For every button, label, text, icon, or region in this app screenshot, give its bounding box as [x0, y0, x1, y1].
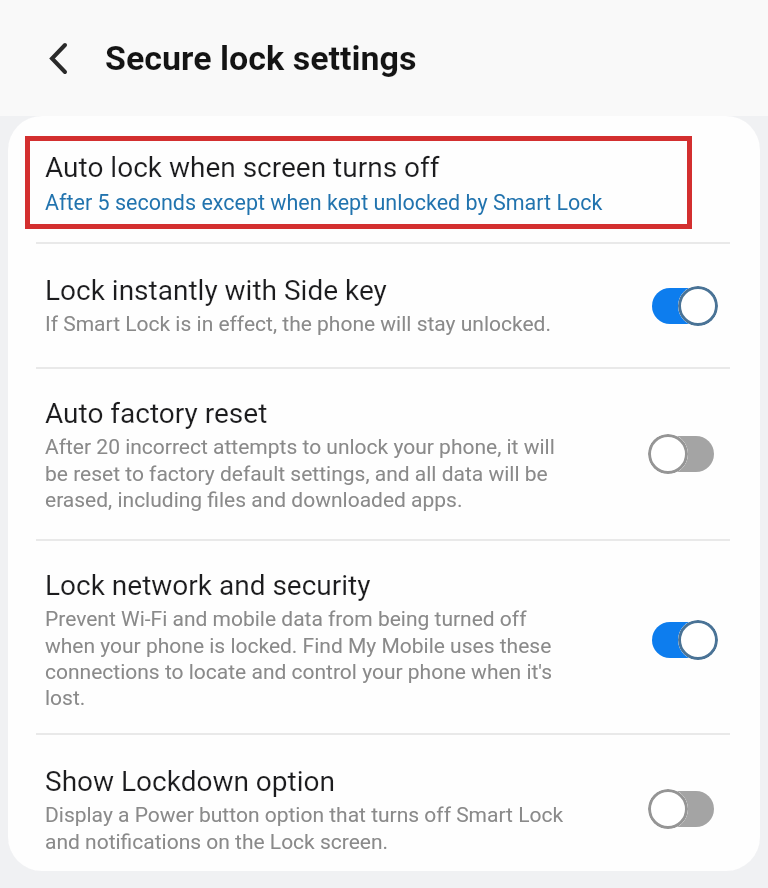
button[interactable]: [648, 620, 718, 660]
button[interactable]: Lock instantly with Side key: [45, 244, 718, 367]
staticText: Auto factory reset: [45, 397, 268, 430]
button[interactable]: Auto lock when screen turns off: [8, 116, 760, 242]
staticText: Secure lock settings: [105, 38, 417, 78]
staticText: If Smart Lock is in effect, the phone wi…: [45, 312, 551, 337]
button[interactable]: [648, 789, 718, 829]
button[interactable]: Auto factory reset: [45, 369, 718, 539]
staticText: Lock instantly with Side key: [45, 274, 387, 307]
staticText: Prevent Wi-Fi and mobile data from being…: [45, 607, 553, 710]
staticText: Auto lock when screen turns off: [45, 151, 440, 184]
staticText: After 20 incorrect attempts to unlock yo…: [45, 435, 555, 512]
button[interactable]: [38, 30, 78, 86]
button[interactable]: [648, 286, 718, 326]
staticText: Show Lockdown option: [45, 765, 335, 798]
button[interactable]: Show Lockdown option: [45, 747, 718, 871]
button[interactable]: Lock network and security: [45, 546, 718, 733]
staticText: Lock network and security: [45, 569, 371, 602]
button[interactable]: [648, 434, 718, 474]
staticText: After 5 seconds except when kept unlocke…: [45, 190, 603, 215]
staticText: Display a Power button option that turns…: [45, 803, 564, 854]
